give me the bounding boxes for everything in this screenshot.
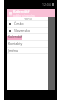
button[interactable]: Česko: [7, 20, 48, 26]
staticText: Jména: [8, 48, 19, 53]
staticText: Kalendář: [13, 9, 30, 14]
button[interactable]: Kalendář: [7, 33, 48, 40]
button[interactable]: Jména: [7, 47, 48, 53]
button[interactable]: Kontakty: [7, 40, 48, 47]
staticText: 12:04: [42, 2, 51, 7]
button[interactable]: [7, 17, 55, 91]
staticText: Kalendář: [8, 34, 23, 39]
staticText: Kontakty: [8, 41, 23, 46]
staticText: 2014: [24, 17, 32, 20]
button[interactable]: Open navigation drawer: [8, 11, 13, 16]
button[interactable]: Slovensko: [7, 27, 48, 33]
staticText: Slovensko: [14, 28, 30, 33]
staticText: Česko: [14, 21, 24, 26]
button[interactable]: 2014: [7, 17, 48, 20]
staticText: svátky a jmeniny: [13, 14, 35, 17]
